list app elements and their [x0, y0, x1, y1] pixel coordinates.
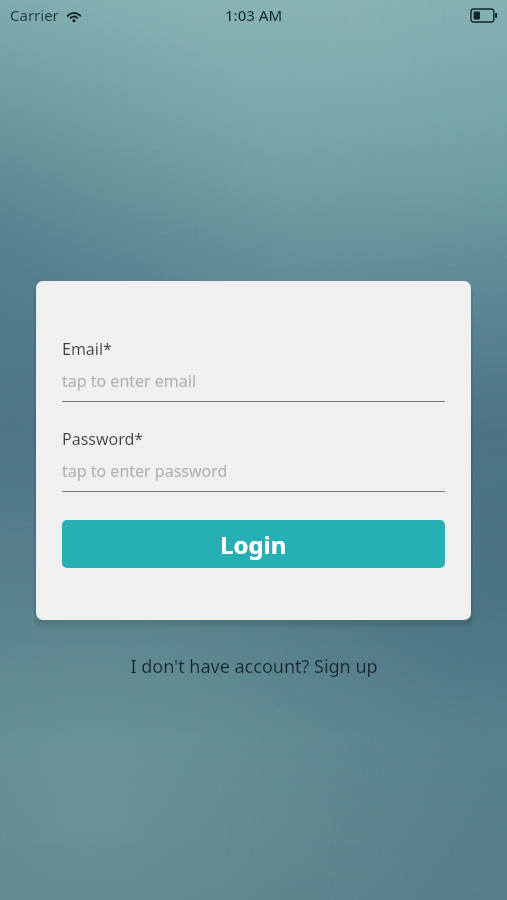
staticText: Login: [220, 528, 287, 561]
button[interactable]: tap to enter email: [62, 370, 445, 402]
staticText: Carrier: [10, 5, 59, 25]
staticText: tap to enter email: [62, 370, 197, 392]
staticText: I don't have account? Sign up: [130, 654, 378, 679]
button[interactable]: tap to enter password: [62, 460, 445, 492]
staticText: 1:03 AM: [225, 5, 283, 25]
staticText: Password*: [62, 428, 144, 450]
button[interactable]: I don't have account? Sign up: [118, 650, 390, 683]
staticText: Email*: [62, 338, 112, 360]
button[interactable]: Login: [62, 520, 445, 568]
staticText: tap to enter password: [62, 460, 228, 482]
